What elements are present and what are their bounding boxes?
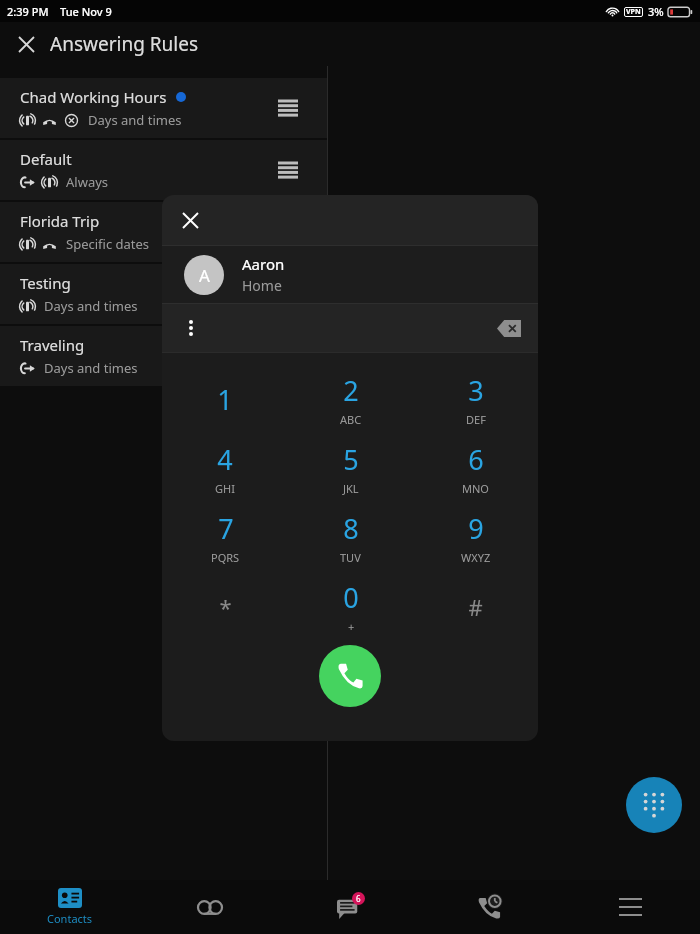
button[interactable]: Call (319, 645, 381, 707)
staticText: Chad Working Hours (20, 87, 167, 107)
staticText: 1 (217, 381, 233, 418)
button[interactable]: # (413, 572, 538, 641)
button[interactable]: Open dialpad (626, 777, 682, 833)
button[interactable]: Contacts (0, 880, 140, 934)
staticText: Days and times (44, 297, 138, 315)
button[interactable]: 5 (288, 434, 413, 503)
staticText: DEF (466, 412, 486, 427)
button[interactable]: Reorder (273, 93, 303, 123)
button[interactable]: 1 (162, 365, 288, 434)
button[interactable]: Menu (560, 880, 700, 934)
button[interactable]: 2 (288, 365, 413, 434)
staticText: TUV (340, 550, 361, 565)
staticText: Specific dates (66, 235, 150, 253)
staticText: 4 (217, 441, 233, 478)
staticText: 0 (343, 579, 359, 616)
button[interactable]: * (162, 572, 288, 641)
staticText: Always (66, 173, 109, 191)
staticText: PQRS (211, 550, 240, 565)
staticText: * (219, 592, 232, 622)
button[interactable]: Default (0, 140, 327, 200)
staticText: 5 (343, 441, 359, 478)
button[interactable]: 8 (288, 503, 413, 572)
staticText: ABC (340, 412, 362, 427)
button[interactable]: Recent calls (420, 880, 560, 934)
staticText: Days and times (88, 111, 182, 129)
staticText: 8 (343, 510, 359, 547)
button[interactable]: Close dialpad (174, 204, 206, 236)
staticText: 3% (648, 4, 664, 19)
staticText: Contacts (47, 911, 93, 926)
button[interactable]: More options (176, 313, 206, 343)
staticText: Aaron (242, 254, 285, 274)
button[interactable]: Florida Trip (0, 202, 327, 262)
staticText: 2 (343, 372, 359, 409)
button[interactable]: Backspace (492, 311, 526, 345)
staticText: JKL (343, 481, 359, 496)
staticText: Days and times (44, 359, 138, 377)
staticText: Traveling (20, 335, 85, 355)
button[interactable]: Reorder (273, 155, 303, 185)
staticText: Tue Nov 9 (60, 4, 112, 19)
staticText: 2:39 PM (7, 4, 49, 19)
button[interactable]: 6 (413, 434, 538, 503)
staticText: 3 (468, 372, 484, 409)
staticText: 6 (468, 441, 484, 478)
staticText: # (468, 592, 483, 622)
button[interactable]: 3 (413, 365, 538, 434)
staticText: GHI (215, 481, 235, 496)
button[interactable]: 7 (162, 503, 288, 572)
button[interactable]: Chad Working Hours (0, 78, 327, 138)
staticText: Answering Rules (50, 31, 199, 57)
button[interactable]: Close (10, 28, 42, 60)
staticText: WXYZ (461, 550, 491, 565)
button[interactable]: Traveling (0, 326, 327, 386)
button[interactable]: 9 (413, 503, 538, 572)
staticText: 7 (218, 510, 234, 547)
staticText: VPN (626, 7, 641, 17)
button[interactable]: 4 (162, 434, 288, 503)
button[interactable]: Messages, 6 unread (280, 880, 420, 934)
staticText: Testing (20, 273, 71, 293)
button[interactable]: Voicemail (140, 880, 280, 934)
button[interactable]: Testing (0, 264, 327, 324)
staticText: A (199, 264, 210, 287)
staticText: 6 (356, 893, 361, 904)
staticText: Florida Trip (20, 211, 100, 231)
staticText: Home (242, 276, 282, 295)
staticText: 9 (468, 510, 484, 547)
button[interactable]: A (184, 246, 538, 303)
button[interactable]: 0 (288, 572, 413, 641)
staticText: + (348, 619, 355, 634)
staticText: Default (20, 149, 72, 169)
staticText: MNO (462, 481, 489, 496)
